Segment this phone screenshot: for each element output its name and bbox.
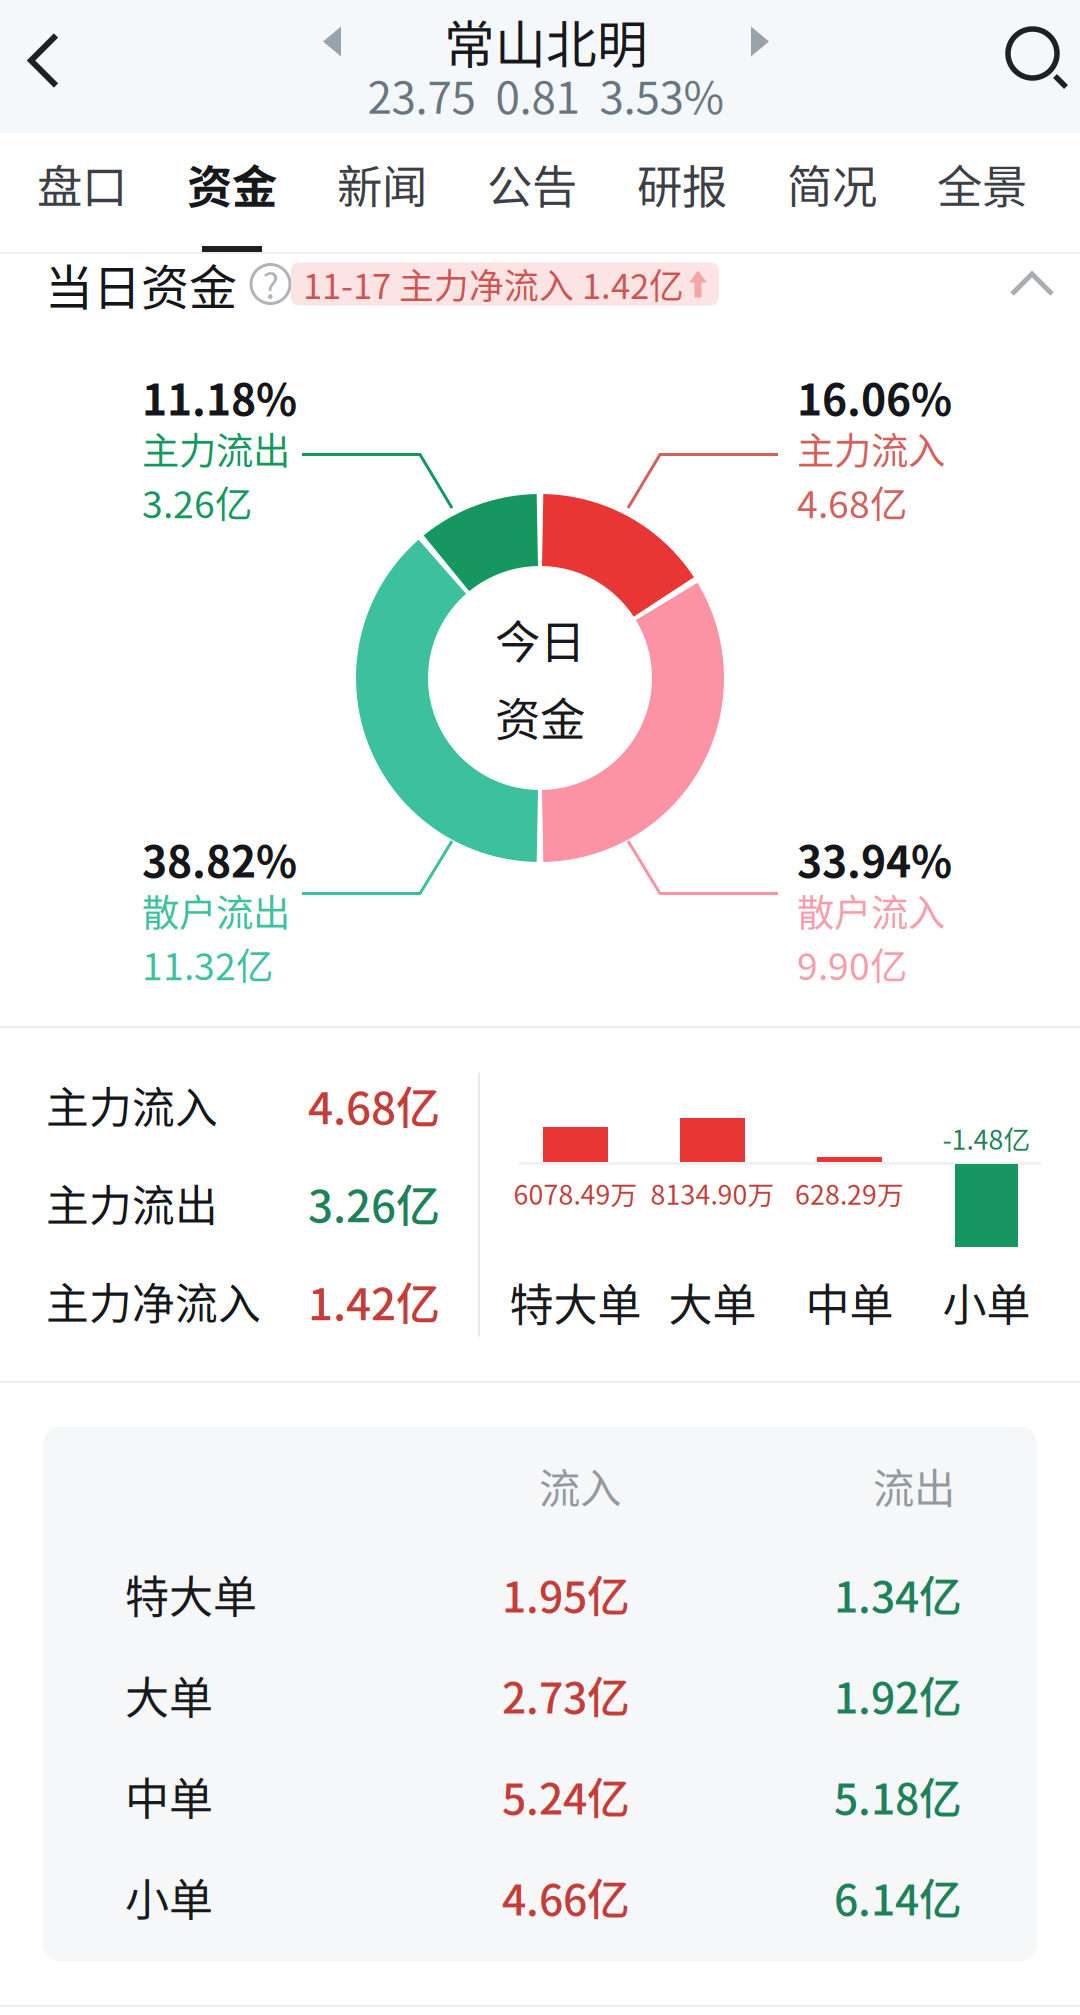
staticText: 简况 — [787, 151, 877, 217]
staticText: 16.06% — [797, 366, 952, 428]
staticText: 常山北明 — [444, 5, 648, 78]
staticText: 全景 — [937, 151, 1027, 217]
staticText: 当日资金 — [45, 249, 237, 319]
button[interactable]: 资金 — [157, 133, 307, 252]
button[interactable]: 研报 — [607, 133, 757, 252]
button[interactable]: Previous stock — [323, 25, 342, 57]
staticText: 研报 — [637, 151, 727, 217]
staticText: 新闻 — [337, 151, 427, 217]
staticText: 3.26亿 — [142, 475, 252, 529]
staticText: 特大单 — [125, 1562, 257, 1626]
staticText: 6.14亿 — [834, 1866, 962, 1928]
staticText: 主力净流入 — [46, 1270, 261, 1332]
staticText: 1.92亿 — [834, 1664, 962, 1726]
staticText: 4.68亿 — [308, 1073, 440, 1137]
button[interactable]: 全景 — [907, 133, 1057, 252]
staticText: 5.24亿 — [502, 1765, 630, 1827]
staticText: 中单 — [805, 1270, 893, 1334]
staticText: 1.34亿 — [834, 1563, 962, 1625]
staticText: 1.42亿 — [308, 1269, 440, 1333]
button[interactable]: Next stock — [750, 25, 769, 57]
staticText: 6078.49万 — [513, 1174, 637, 1212]
staticText: 11.32亿 — [142, 937, 273, 991]
staticText: 特大单 — [509, 1270, 641, 1334]
staticText: 8134.90万 — [650, 1174, 774, 1212]
staticText: 9.90亿 — [797, 937, 907, 991]
button[interactable]: Collapse section — [990, 269, 1054, 299]
staticText: 2.73亿 — [502, 1664, 630, 1726]
button[interactable]: Back — [28, 13, 108, 119]
staticText: 小单 — [942, 1270, 1030, 1334]
staticText: 4.66亿 — [502, 1866, 630, 1928]
staticText: 大单 — [668, 1270, 756, 1334]
staticText: 主力流出 — [46, 1172, 218, 1234]
staticText: -1.48亿 — [942, 1119, 1030, 1157]
staticText: ? — [262, 259, 278, 309]
staticText: 4.68亿 — [797, 475, 907, 529]
staticText: 公告 — [487, 151, 577, 217]
staticText: 23.75 0.81 3.53% — [367, 63, 724, 126]
button[interactable]: 新闻 — [307, 133, 457, 252]
button[interactable]: 盘口 — [7, 133, 157, 252]
staticText: 主力流出 — [142, 421, 290, 476]
staticText: 今日 — [495, 606, 585, 672]
button[interactable]: 简况 — [757, 133, 907, 252]
staticText: 628.29万 — [795, 1174, 904, 1212]
staticText: 散户流入 — [797, 883, 945, 938]
staticText: 大单 — [125, 1663, 213, 1727]
staticText: 1.95亿 — [502, 1563, 630, 1625]
staticText: 小单 — [125, 1865, 213, 1929]
staticText: 资金 — [187, 151, 277, 217]
staticText: 资金 — [495, 684, 585, 750]
staticText: 主力流入 — [46, 1074, 218, 1136]
staticText: 散户流出 — [142, 883, 290, 938]
staticText: 11.18% — [142, 366, 297, 428]
staticText: 5.18亿 — [834, 1765, 962, 1827]
staticText: 流入 — [539, 1456, 621, 1515]
button[interactable]: 公告 — [457, 133, 607, 252]
staticText: 流出 — [873, 1456, 955, 1515]
staticText: 33.94% — [797, 828, 952, 890]
staticText: 主力流入 — [797, 421, 945, 476]
staticText: 3.26亿 — [308, 1171, 440, 1235]
button[interactable]: Search — [984, 31, 1080, 102]
staticText: 盘口 — [37, 151, 127, 217]
staticText: 38.82% — [142, 828, 297, 890]
staticText: 11-17 主力净流入 1.42亿 — [303, 259, 684, 309]
staticText: 中单 — [125, 1764, 213, 1828]
